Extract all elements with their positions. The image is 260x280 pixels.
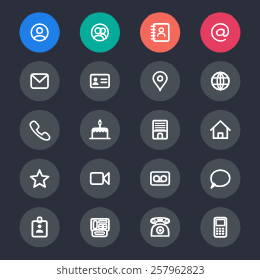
button[interactable]: Telephone	[140, 207, 180, 247]
button[interactable]: Voicemail	[140, 158, 180, 198]
button[interactable]: Mobile	[200, 207, 240, 247]
button[interactable]: Home	[200, 110, 240, 150]
button[interactable]: ID badge	[19, 207, 59, 247]
button[interactable]: Video call	[80, 158, 120, 198]
button[interactable]: Location	[140, 61, 180, 101]
button[interactable]: Profile	[19, 12, 59, 52]
button[interactable]: Birthday	[80, 110, 120, 150]
button[interactable]: Contacts group	[80, 12, 120, 52]
staticText: shutterstock.com · 257962823	[56, 263, 205, 277]
button[interactable]: Call	[19, 110, 59, 150]
button[interactable]: Favourite	[19, 158, 59, 198]
button[interactable]: Email address	[200, 12, 240, 52]
button[interactable]: Website	[200, 61, 240, 101]
button[interactable]: News	[80, 207, 120, 247]
button[interactable]: Message	[200, 158, 240, 198]
button[interactable]: Mail	[19, 61, 59, 101]
button[interactable]: Contact card	[80, 61, 120, 101]
button[interactable]: Address book	[140, 12, 180, 52]
button[interactable]: Office	[140, 110, 180, 150]
